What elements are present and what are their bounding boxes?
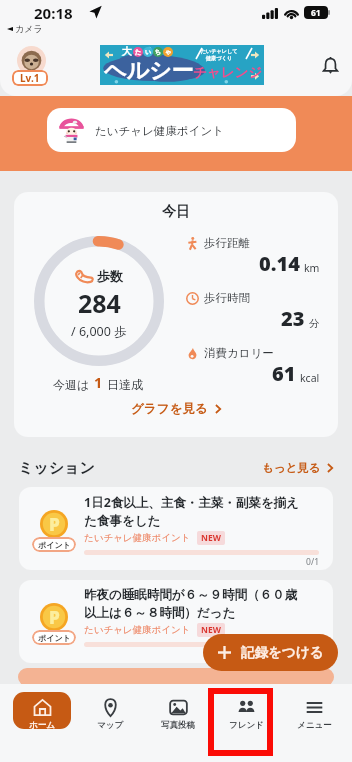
staticText: NEW	[201, 624, 221, 636]
staticText: 大	[122, 45, 132, 58]
staticText: メニュー	[297, 720, 332, 729]
staticText: ポイント	[38, 633, 71, 643]
staticText: 0/1	[84, 556, 319, 568]
staticText: NEW	[201, 532, 221, 544]
staticText: 歩行距離	[204, 236, 250, 250]
staticText: 1日2食以上、主食・主菜・副菜を揃え た食事をした	[84, 494, 299, 529]
button[interactable]: Notifications	[314, 49, 346, 81]
button[interactable]: P	[19, 580, 333, 663]
staticText: カメラ	[15, 23, 43, 34]
staticText: P	[49, 513, 60, 536]
staticText: 歩数	[97, 268, 123, 284]
button[interactable]: 写真投稿	[149, 692, 207, 729]
staticText: / 6,000 歩	[71, 323, 127, 340]
staticText: 日達成	[107, 377, 143, 392]
staticText: グラフを見る	[131, 401, 208, 417]
button[interactable]: たいチャレ健康ポイント	[47, 108, 296, 152]
staticText: たいチャレ健康ポイント	[84, 532, 191, 544]
staticText: km	[304, 261, 320, 275]
staticText: チャレンジ	[193, 64, 263, 81]
button[interactable]: 記録をつける	[203, 634, 338, 671]
staticText: い	[145, 48, 152, 56]
staticText: 1	[94, 372, 103, 392]
staticText: 消費カロリー	[204, 346, 274, 360]
staticText: フレンド	[229, 720, 264, 729]
staticText: たいチャレして 健康づくり	[200, 48, 238, 62]
staticText: Lv.1	[20, 71, 40, 85]
staticText: たいチャレ健康ポイント	[95, 124, 224, 138]
button[interactable]: もっと見る	[257, 457, 338, 479]
staticText: 23	[281, 305, 305, 332]
staticText: ホーム	[29, 720, 55, 729]
staticText: ち	[155, 48, 162, 56]
staticText: たいチャレ健康ポイント	[84, 624, 191, 636]
staticText: もっと見る	[262, 461, 321, 475]
staticText: 歩行時間	[204, 291, 250, 305]
staticText: 記録をつける	[241, 644, 324, 661]
staticText: ヘルシー	[104, 57, 196, 85]
staticText: た	[135, 48, 142, 56]
staticText: 61	[272, 360, 296, 387]
staticText: ミッション	[18, 459, 95, 478]
staticText: 分	[309, 317, 320, 330]
staticText: ポイント	[38, 540, 71, 550]
staticText: マップ	[97, 720, 124, 729]
staticText: P	[49, 606, 60, 629]
staticText: kcal	[300, 371, 320, 385]
staticText: 写真投稿	[161, 720, 195, 729]
button[interactable]: マップ	[81, 692, 139, 729]
button[interactable]: P	[19, 487, 333, 570]
staticText: 今週は	[53, 377, 90, 392]
button[interactable]: ホーム	[13, 692, 71, 729]
staticText: 0/1	[84, 648, 319, 660]
staticText: 昨夜の睡眠時間が６～９時間（６０歳 以上は６～８時間）だった	[84, 587, 298, 621]
staticText: 284	[78, 286, 121, 320]
staticText: 今日	[162, 203, 190, 221]
staticText: ゃ	[165, 48, 172, 56]
button[interactable]: グラフを見る	[121, 398, 231, 420]
staticText: 20:18	[34, 3, 73, 23]
button[interactable]: フレンド	[217, 692, 275, 729]
staticText: 0.14	[259, 250, 300, 277]
button[interactable]: 大	[100, 45, 264, 85]
staticText: 61	[311, 7, 321, 19]
button[interactable]: メニュー	[285, 692, 343, 729]
